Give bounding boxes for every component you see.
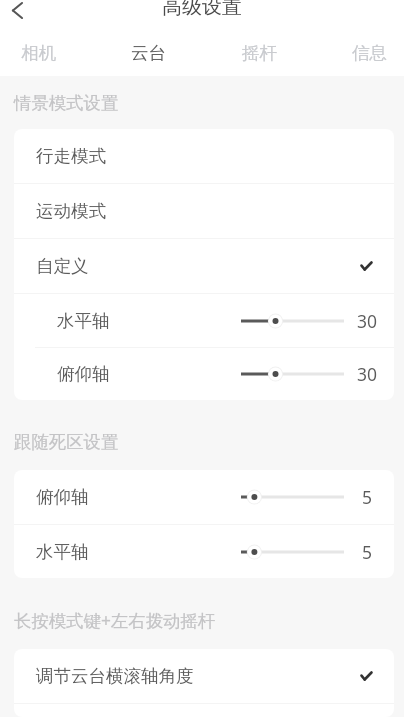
staticText: 5 <box>362 540 373 564</box>
staticText: 高级设置 <box>162 0 242 19</box>
staticText: 摇杆 <box>242 42 278 64</box>
staticText: 30 <box>357 362 378 386</box>
button[interactable]: 调节云台横滚轴角度 <box>14 649 394 703</box>
button[interactable]: 相机 <box>21 42 57 64</box>
button[interactable]: 运动模式 <box>14 184 394 238</box>
staticText: 云台 <box>131 42 167 64</box>
staticText: 运动模式 <box>36 200 106 222</box>
staticText: 5 <box>362 485 373 509</box>
staticText: 长按模式键+左右拨动摇杆 <box>14 608 216 632</box>
button[interactable]: 信息 <box>352 42 388 64</box>
button[interactable]: 水平轴 <box>14 525 394 578</box>
button[interactable]: 行走模式 <box>14 129 394 183</box>
staticText: 情景模式设置 <box>14 92 119 114</box>
staticText: 俯仰轴 <box>36 486 89 508</box>
staticText: 跟随死区设置 <box>14 431 119 453</box>
button[interactable]: Back <box>2 0 32 25</box>
staticText: 相机 <box>21 42 57 64</box>
button[interactable]: 俯仰轴 <box>14 348 394 400</box>
staticText: 俯仰轴 <box>57 363 110 385</box>
staticText: 信息 <box>352 42 388 64</box>
staticText: 30 <box>357 309 378 333</box>
button[interactable]: 水平轴 <box>14 294 394 347</box>
button[interactable]: 云台 <box>131 42 167 64</box>
staticText: 调节云台横滚轴角度 <box>36 665 194 687</box>
button[interactable]: 俯仰轴 <box>14 470 394 524</box>
staticText: 水平轴 <box>36 541 89 563</box>
button[interactable]: 自定义 <box>14 239 394 293</box>
staticText: 行走模式 <box>36 145 106 167</box>
staticText: 自定义 <box>36 255 89 277</box>
button[interactable]: 摇杆 <box>242 42 278 64</box>
staticText: 水平轴 <box>57 310 110 332</box>
